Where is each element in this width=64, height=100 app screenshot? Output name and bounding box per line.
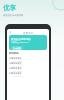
staticText: 立即续费 (13, 47, 21, 49)
button[interactable]: 专属客服通道 (7, 72, 49, 77)
button[interactable]: 立即续费 (13, 47, 21, 49)
staticText: 会员中心 (23, 31, 34, 34)
staticText: 专属客服通道 (9, 67, 22, 70)
staticText: 优享 (3, 4, 16, 12)
button[interactable]: 黄金会员 尊享特权 (9, 35, 47, 50)
staticText: 7x24小时在线服务 (9, 76, 23, 77)
button[interactable]: Back (9, 31, 12, 34)
staticText: 专属客服通道 (9, 62, 22, 65)
staticText: 7x24小时在线服务 (9, 71, 23, 72)
button[interactable]: 专属客服通道 (7, 67, 49, 72)
staticText: 有效期至 2025-12-31 (11, 41, 29, 44)
staticText: 专属客服通道 (9, 72, 22, 75)
staticText: 品质生活 从这里开始 (3, 14, 24, 17)
button[interactable]: 专属客服通道 (7, 62, 49, 67)
staticText: 7x24小时在线服务 (9, 66, 23, 67)
staticText: 我的权益 (9, 52, 19, 55)
staticText: 7x24小时在线服务 (9, 61, 23, 62)
button[interactable]: 专属客服通道 (7, 57, 49, 62)
staticText: 黄金会员 尊享特权 (11, 37, 31, 40)
staticText: 专属客服通道 (9, 57, 22, 60)
